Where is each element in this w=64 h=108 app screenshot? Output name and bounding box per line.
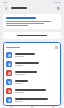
button[interactable]: Home [22, 106, 43, 108]
button[interactable] [3, 14, 61, 29]
button[interactable] [3, 86, 61, 95]
button[interactable]: Back [3, 5, 9, 11]
button[interactable] [3, 77, 61, 86]
button[interactable]: Sort [3, 44, 61, 50]
button[interactable] [3, 68, 61, 77]
other: Sort [55, 46, 58, 49]
button[interactable]: Back [43, 106, 64, 108]
button[interactable] [3, 95, 61, 104]
button[interactable]: Search [55, 5, 61, 11]
button[interactable] [3, 59, 61, 68]
button[interactable] [3, 50, 61, 59]
button[interactable] [3, 32, 61, 39]
button[interactable]: Recents [0, 106, 22, 108]
